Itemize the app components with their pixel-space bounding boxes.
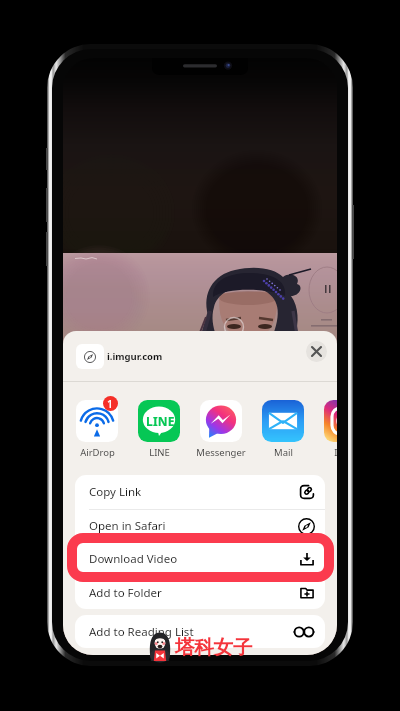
button[interactable]: i.imgur.com xyxy=(63,331,337,381)
staticText: AirDrop xyxy=(80,446,115,459)
button[interactable]: Open in Safari xyxy=(75,509,325,543)
button[interactable]: Add to Folder xyxy=(75,576,325,609)
staticText: LINE xyxy=(146,413,175,429)
staticText: Add to Reading List xyxy=(89,624,194,640)
staticText: Copy Link xyxy=(89,484,142,500)
button[interactable]: Download Video xyxy=(75,542,325,576)
staticText: Open in Safari xyxy=(89,518,166,534)
staticText: LINE xyxy=(149,446,170,459)
button[interactable]: Close xyxy=(306,341,327,362)
button[interactable]: Copy Link xyxy=(75,475,325,509)
staticText: 1 xyxy=(107,397,114,411)
staticText: Insta xyxy=(334,446,337,459)
button[interactable]: Mail xyxy=(252,395,314,450)
staticText: Mail xyxy=(274,446,293,459)
button[interactable]: Add to Reading List xyxy=(75,615,325,648)
button[interactable]: 1 xyxy=(66,395,128,450)
staticText: i.imgur.com xyxy=(107,350,163,363)
button[interactable]: LINE xyxy=(128,395,190,450)
staticText: Add to Folder xyxy=(89,585,162,601)
staticText: 塔科女子 xyxy=(175,635,253,660)
staticText: Messenger xyxy=(196,446,246,459)
button[interactable]: Insta xyxy=(314,395,337,450)
button[interactable]: Messenger xyxy=(190,395,252,450)
staticText: Download Video xyxy=(89,551,178,567)
other: Site watermark xyxy=(150,630,172,663)
